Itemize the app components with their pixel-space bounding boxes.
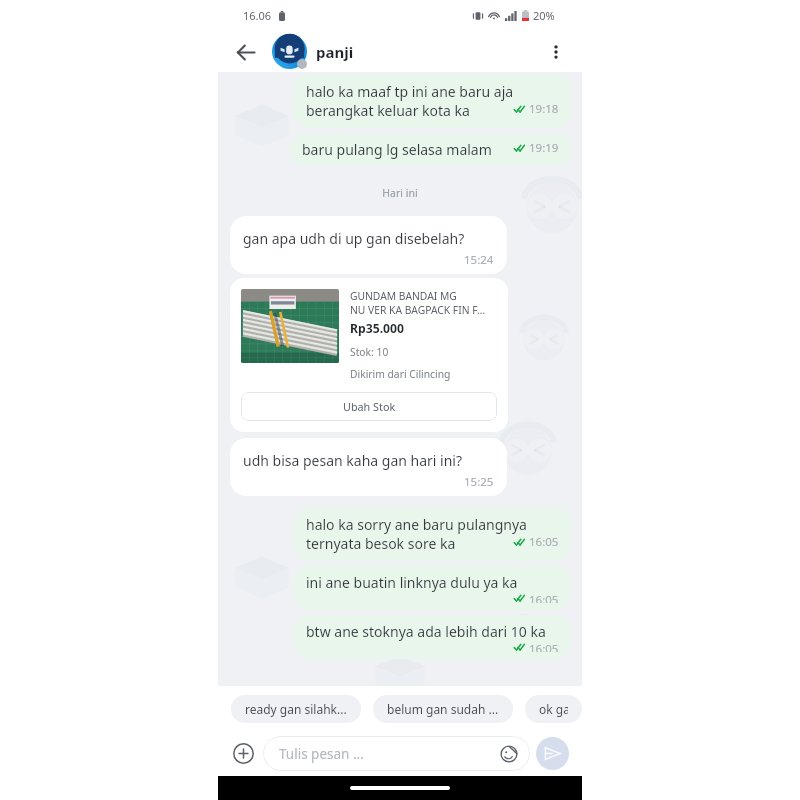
staticText: Hari ini xyxy=(218,186,582,200)
staticText: panji xyxy=(316,42,354,62)
staticText: berangkat keluar kota ka xyxy=(306,101,470,120)
button[interactable]: halo ka maaf tp ini ane baru aja xyxy=(294,74,571,128)
staticText: 20% xyxy=(533,8,555,23)
staticText: 15:24 xyxy=(464,252,494,268)
staticText: NU VER KA BAGPACK FIN F… xyxy=(350,303,486,317)
button[interactable]: Back xyxy=(227,34,263,70)
staticText: Tulis pesan ... xyxy=(279,745,364,763)
button[interactable]: baru pulang lg selasa malam xyxy=(290,133,571,166)
staticText: ternyata besok sore ka xyxy=(306,534,456,553)
button[interactable]: halo ka sorry ane baru pulangnya xyxy=(294,507,571,561)
staticText: ini ane buatin linknya dulu ya ka xyxy=(306,573,518,592)
staticText: gan apa udh di up gan disebelah? xyxy=(243,229,465,248)
button[interactable]: ok gan xyxy=(525,695,582,723)
button[interactable]: More options xyxy=(536,32,576,72)
staticText: halo ka sorry ane baru pulangnya xyxy=(306,515,527,534)
staticText: 15:25 xyxy=(464,474,494,490)
staticText: 16:05 xyxy=(529,592,559,603)
staticText: udh bisa pesan kaha gan hari ini? xyxy=(243,451,463,470)
button[interactable]: btw ane stoknya ada lebih dari 10 ka xyxy=(294,615,571,659)
button[interactable]: ready gan silahk... xyxy=(231,695,361,723)
staticText: Stok: 10 xyxy=(350,345,389,359)
button[interactable]: Send xyxy=(536,737,569,770)
staticText: ok gan xyxy=(539,701,568,717)
staticText: 19:18 xyxy=(529,101,559,117)
staticText: GUNDAM BANDAI MG xyxy=(350,289,457,303)
staticText: belum gan sudah ... xyxy=(387,701,499,717)
button[interactable]: udh bisa pesan kaha gan hari ini? xyxy=(230,438,507,496)
staticText: Rp35.000 xyxy=(350,320,404,337)
button[interactable]: belum gan sudah ... xyxy=(373,695,513,723)
button[interactable]: gan apa udh di up gan disebelah? xyxy=(230,216,507,274)
button[interactable]: GUNDAM BANDAI MG xyxy=(230,278,508,432)
staticText: Ubah Stok xyxy=(343,399,396,414)
staticText: ready gan silahk... xyxy=(245,701,347,717)
button[interactable]: Ubah Stok xyxy=(241,392,497,421)
staticText: 16:05 xyxy=(529,534,559,550)
staticText: 16:05 xyxy=(529,641,559,652)
staticText: Dikirim dari Cilincing xyxy=(350,367,451,381)
staticText: btw ane stoknya ada lebih dari 10 ka xyxy=(306,622,546,641)
staticText: 19:19 xyxy=(529,140,559,156)
staticText: baru pulang lg selasa malam xyxy=(302,140,492,159)
button[interactable]: Attach xyxy=(228,738,258,768)
button[interactable]: Tulis pesan ... xyxy=(263,736,530,771)
button[interactable]: ini ane buatin linknya dulu ya ka xyxy=(294,566,571,610)
staticText: 16.06 xyxy=(243,8,272,23)
staticText: halo ka maaf tp ini ane baru aja xyxy=(306,82,514,101)
